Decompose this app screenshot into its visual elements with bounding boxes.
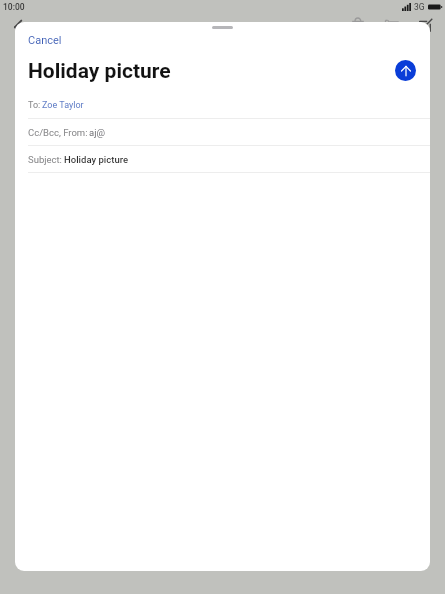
staticText: Holiday picture: [64, 154, 129, 165]
staticText: Zoe Taylor: [42, 100, 84, 111]
staticText: aj@: [89, 127, 105, 138]
staticText: 10:00: [3, 2, 25, 12]
button[interactable]: Delete: [348, 14, 368, 34]
button[interactable]: Subject:: [15, 146, 430, 172]
staticText: Cancel: [28, 34, 62, 47]
staticText: Subject:: [28, 154, 65, 165]
staticText: Holiday picture: [28, 59, 171, 84]
button[interactable]: Compose: [416, 14, 438, 36]
button[interactable]: Send: [395, 60, 416, 81]
button[interactable]: Back: [6, 16, 28, 38]
button[interactable]: Archive: [382, 14, 402, 34]
button[interactable]: To:: [15, 92, 430, 118]
staticText: To:: [28, 100, 43, 111]
button[interactable]: Cancel: [15, 33, 75, 48]
staticText: 3G: [414, 2, 425, 12]
button[interactable]: Cc/Bcc, From:: [15, 119, 430, 145]
staticText: Cc/Bcc, From:: [28, 127, 90, 138]
